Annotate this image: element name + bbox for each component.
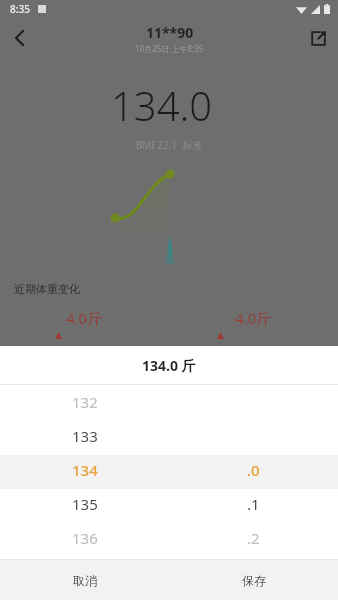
staticText: 136 — [72, 528, 98, 548]
button[interactable]: Back — [0, 18, 40, 58]
button[interactable]: 133 — [0, 419, 169, 453]
staticText: .2 — [247, 528, 260, 548]
button[interactable]: .0 — [169, 453, 338, 487]
staticText: BMI 22.1 标准 — [0, 138, 338, 152]
staticText: 133 — [72, 426, 98, 446]
staticText: 取消 — [73, 573, 97, 588]
staticText: 11**90 — [146, 23, 194, 42]
staticText: 134 — [72, 460, 98, 480]
staticText: .0 — [247, 460, 260, 480]
staticText: 8:35 — [10, 2, 30, 16]
staticText: 4.0斤 — [66, 308, 103, 328]
staticText: 4.0斤 — [235, 308, 272, 328]
button[interactable]: 134 — [0, 453, 169, 487]
staticText: 134.0 — [111, 78, 213, 132]
button[interactable]: .1 — [169, 487, 338, 521]
staticText: 135 — [72, 494, 98, 514]
staticText: 132 — [72, 392, 98, 412]
button[interactable]: Share — [298, 18, 338, 58]
staticText: 134.0 斤 — [142, 356, 196, 375]
button[interactable]: 136 — [0, 521, 169, 555]
button[interactable]: 132 — [0, 385, 169, 419]
staticText: 10月25日 上午8:35 — [135, 43, 204, 54]
button[interactable]: 取消 — [0, 560, 169, 600]
staticText: 近期体重变化 — [14, 282, 80, 296]
staticText: 保存 — [242, 573, 266, 588]
staticText: .1 — [247, 494, 260, 514]
button[interactable]: 135 — [0, 487, 169, 521]
button[interactable]: 保存 — [169, 560, 338, 600]
button[interactable]: .2 — [169, 521, 338, 555]
